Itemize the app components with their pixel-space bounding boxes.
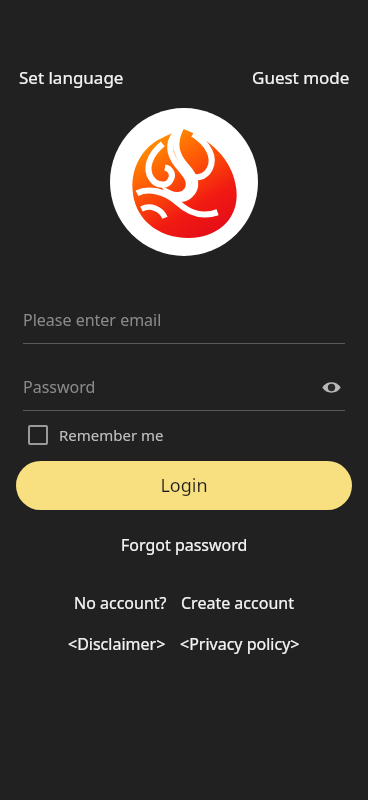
button[interactable]: <Disclaimer> (66, 630, 168, 658)
button[interactable]: Set language (19, 66, 124, 89)
button[interactable]: Login (16, 461, 352, 510)
staticText: Remember me (59, 425, 164, 445)
button[interactable]: Please enter email (23, 305, 345, 344)
button[interactable]: Password (23, 372, 317, 402)
staticText: Guest mode (252, 66, 350, 89)
button[interactable]: Show password (317, 373, 345, 401)
button[interactable]: Forgot password (115, 531, 254, 559)
staticText: No account? (74, 592, 167, 614)
staticText: Set language (19, 66, 124, 89)
staticText: <Privacy policy> (180, 633, 300, 655)
staticText: <Disclaimer> (68, 633, 166, 655)
button[interactable]: <Privacy policy> (178, 630, 302, 658)
staticText: Login (160, 473, 208, 498)
staticText: Please enter email (23, 309, 162, 331)
button[interactable]: Create account (179, 589, 296, 617)
other: App logo (110, 108, 258, 256)
button[interactable]: No account? (72, 589, 169, 617)
staticText: Create account (181, 592, 294, 614)
button[interactable]: Remember me (26, 423, 166, 447)
staticText: Password (23, 376, 96, 398)
staticText: Forgot password (121, 534, 248, 556)
button[interactable]: Guest mode (252, 66, 350, 89)
